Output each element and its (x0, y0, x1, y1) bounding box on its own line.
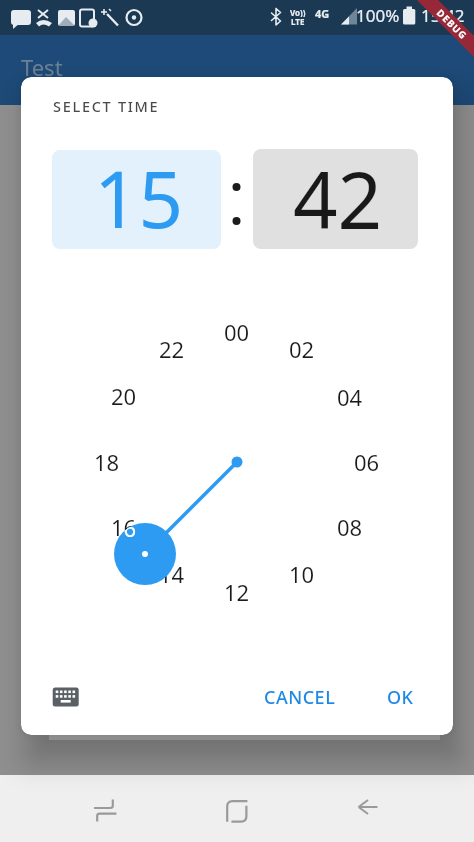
staticText: SELECT TIME (53, 96, 160, 116)
button[interactable]: 42 (253, 149, 418, 249)
staticText: 08 (337, 512, 363, 538)
staticText: 06 (354, 447, 380, 473)
staticText: DEBUG (434, 6, 470, 43)
staticText: 10 (289, 559, 315, 585)
button[interactable] (80, 779, 134, 833)
staticText: 100% (356, 4, 400, 26)
staticText: 02 (289, 334, 315, 360)
button[interactable]: 15 (52, 150, 221, 249)
button[interactable]: CANCEL (252, 679, 348, 715)
button[interactable] (210, 779, 264, 833)
staticText: 22 (159, 334, 185, 360)
staticText: 04 (337, 382, 363, 408)
staticText: 16 (114, 523, 137, 537)
staticText: 00 (224, 317, 250, 343)
staticText: OK (387, 685, 414, 710)
staticText: 14 (159, 559, 185, 585)
staticText: 15 (94, 150, 184, 244)
staticText: 12 (224, 577, 250, 603)
staticText: 15:42 (421, 4, 465, 26)
staticText: 16 (111, 512, 137, 538)
staticText: CANCEL (264, 685, 336, 710)
staticText: 20 (111, 381, 137, 407)
button[interactable]: OK (374, 679, 426, 715)
staticText: Test (21, 52, 63, 82)
staticText: 4G (315, 6, 330, 20)
staticText: Vo)) (290, 7, 306, 17)
staticText: 18 (94, 447, 120, 473)
staticText: LTE (291, 16, 305, 26)
button[interactable] (45, 679, 87, 715)
button[interactable] (341, 779, 395, 833)
staticText: 42 (293, 149, 383, 246)
